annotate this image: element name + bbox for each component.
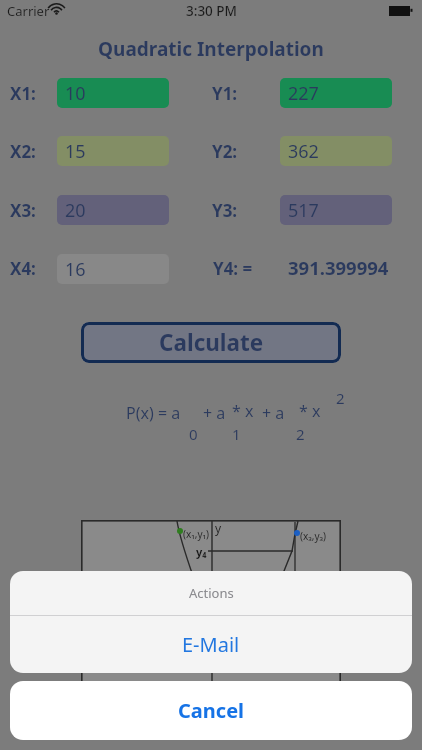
staticText: E-Mail: [182, 631, 240, 658]
button[interactable]: 15: [57, 136, 169, 166]
button[interactable]: Calculate: [81, 322, 341, 363]
staticText: 20: [65, 198, 86, 223]
staticText: 15: [65, 139, 86, 164]
staticText: 16: [65, 257, 86, 282]
staticText: X4:: [10, 257, 36, 280]
button[interactable]: Cancel: [10, 681, 412, 740]
staticText: 391.399994: [288, 255, 389, 280]
staticText: (x₁,y₁): [183, 527, 210, 541]
staticText: 3:30 PM: [186, 2, 237, 20]
staticText: Cancel: [178, 697, 245, 724]
button[interactable]: 10: [57, 78, 169, 108]
staticText: (x₃,y₃): [300, 529, 327, 543]
staticText: 227: [288, 81, 319, 106]
button[interactable]: 20: [57, 195, 169, 225]
staticText: + a: [262, 402, 285, 424]
staticText: 10: [65, 81, 86, 106]
staticText: Carrier: [7, 2, 50, 20]
staticText: * x: [299, 400, 321, 422]
staticText: 1: [232, 424, 241, 444]
staticText: y: [215, 520, 222, 536]
staticText: Y1:: [212, 82, 238, 105]
button[interactable]: 517: [280, 195, 392, 225]
staticText: Y3:: [212, 199, 238, 222]
staticText: 517: [288, 198, 319, 223]
button[interactable]: 227: [280, 78, 392, 108]
staticText: Quadratic Interpolation: [98, 36, 324, 62]
other: Battery full: [389, 5, 414, 17]
staticText: * x: [232, 400, 254, 422]
button[interactable]: 16: [57, 254, 169, 284]
staticText: Actions: [189, 584, 234, 602]
staticText: Y4: =: [213, 257, 253, 280]
staticText: 2: [296, 424, 305, 444]
staticText: Y2:: [212, 140, 238, 163]
staticText: y₄: [196, 544, 207, 559]
staticText: X1:: [10, 82, 36, 105]
staticText: 362: [288, 139, 319, 164]
button[interactable]: 362: [280, 136, 392, 166]
staticText: X3:: [10, 199, 36, 222]
staticText: 0: [189, 424, 198, 444]
staticText: X2:: [10, 140, 36, 163]
other: Wi-Fi signal: [50, 4, 63, 15]
staticText: Calculate: [159, 327, 264, 358]
staticText: 2: [336, 388, 345, 408]
staticText: + a: [203, 402, 226, 424]
staticText: P(x) = a: [126, 402, 181, 424]
button[interactable]: E-Mail: [10, 616, 412, 673]
